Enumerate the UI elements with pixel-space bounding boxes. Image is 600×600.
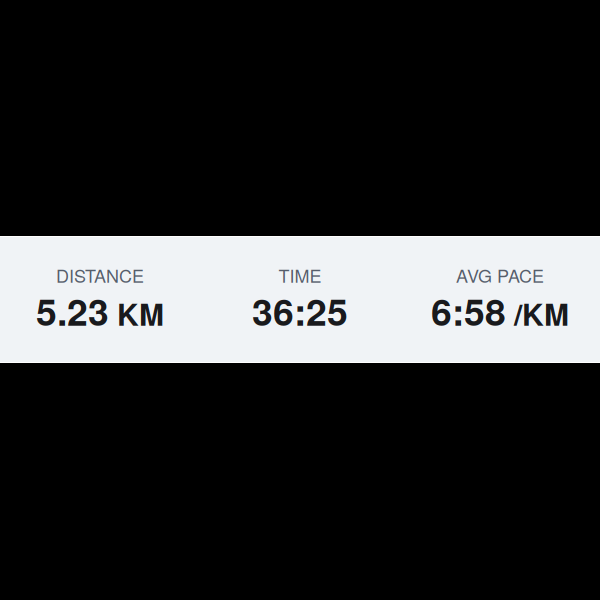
staticText: TIME	[278, 262, 321, 288]
staticText: 5.23	[36, 284, 109, 337]
staticText: 36:25	[252, 284, 348, 337]
staticText: DISTANCE	[56, 262, 144, 288]
staticText: AVG PACE	[456, 262, 544, 288]
staticText: /KM	[514, 292, 569, 335]
staticText: 6:58	[431, 284, 506, 337]
staticText: KM	[117, 292, 164, 335]
